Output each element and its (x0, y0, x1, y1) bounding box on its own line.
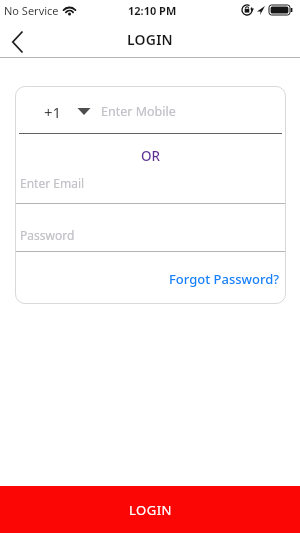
staticText: LOGIN (127, 30, 173, 49)
button[interactable]: LOGIN (0, 486, 300, 533)
staticText: LOGIN (129, 501, 172, 519)
staticText: 12:10 PM (128, 3, 177, 18)
staticText: Enter Mobile (101, 103, 176, 120)
staticText: Enter Email (20, 175, 85, 191)
staticText: +1 (44, 102, 62, 122)
button[interactable]: +1 (15, 96, 286, 127)
staticText: Forgot Password? (169, 270, 280, 288)
button[interactable] (4, 27, 30, 57)
staticText: No Service (4, 3, 59, 18)
button[interactable]: Enter Email (15, 166, 286, 199)
staticText: Password (20, 227, 75, 243)
button[interactable]: Password (15, 220, 286, 249)
button[interactable]: Forgot Password? (169, 270, 280, 288)
staticText: OR (141, 147, 161, 165)
